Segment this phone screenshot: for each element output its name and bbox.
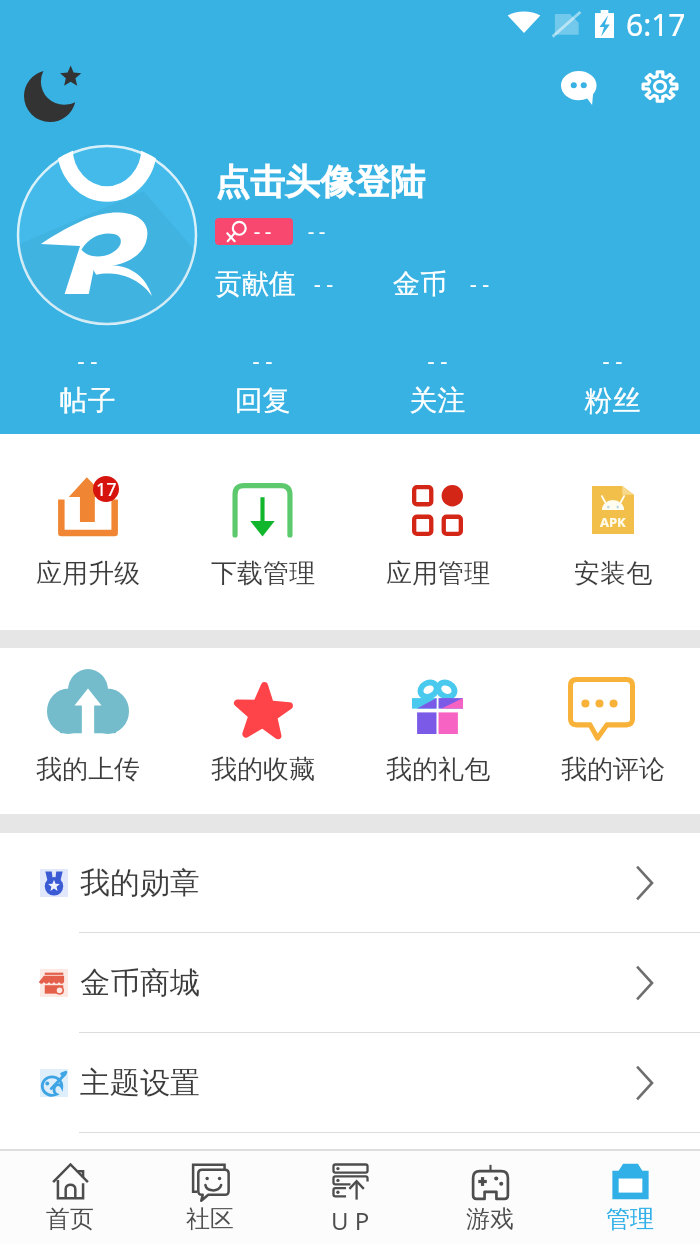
staticText: 我的礼包 [386, 753, 490, 786]
button[interactable]: - - [525, 345, 700, 418]
staticText: 关注 [350, 383, 525, 418]
staticText: 点击头像登陆 [215, 160, 425, 204]
button[interactable]: 游戏 [420, 1151, 560, 1244]
staticText: 帖子 [0, 383, 175, 418]
staticText: - - [175, 345, 350, 375]
staticText: U P [331, 1204, 370, 1237]
staticText: 我的勋章 [80, 864, 200, 902]
staticText: 我的收藏 [211, 753, 315, 786]
staticText: - - [0, 345, 175, 375]
button[interactable]: 我的上传 [0, 753, 175, 786]
button[interactable]: 我的勋章 [0, 833, 700, 933]
button[interactable]: 管理 [560, 1151, 700, 1244]
staticText: 金币 [393, 267, 447, 301]
staticText: - - [525, 345, 700, 375]
staticText: - - [314, 270, 333, 299]
staticText: 我的上传 [36, 753, 140, 786]
staticText: 6:17 [626, 4, 686, 45]
button[interactable]: - - [175, 345, 350, 418]
button[interactable]: Avatar login [16, 144, 198, 326]
staticText: 贡献值 [215, 267, 296, 301]
button[interactable]: 首页 [0, 1151, 140, 1244]
button[interactable]: Night mode [11, 56, 90, 135]
staticText: - - [308, 219, 326, 245]
staticText: - - [470, 270, 489, 299]
button[interactable]: 金币商城 [0, 933, 700, 1033]
button[interactable]: 我的礼包 [350, 753, 525, 786]
staticText: 应用管理 [386, 557, 490, 590]
button[interactable]: - - [0, 345, 175, 418]
staticText: 金币商城 [80, 964, 200, 1002]
staticText: 社区 [186, 1204, 234, 1234]
staticText: 17 [96, 477, 117, 502]
button[interactable]: U P [280, 1151, 420, 1244]
button[interactable]: Messages [543, 52, 615, 124]
staticText: 下载管理 [211, 557, 315, 590]
staticText: 回复 [175, 383, 350, 418]
staticText: 管理 [606, 1204, 654, 1234]
button[interactable]: 我的收藏 [175, 753, 350, 786]
staticText: 粉丝 [525, 383, 700, 418]
button[interactable]: 社区 [140, 1151, 280, 1244]
button[interactable]: - - [350, 345, 525, 418]
staticText: - - [350, 345, 525, 375]
button[interactable]: 应用管理 [350, 557, 525, 590]
button[interactable]: 主题设置 [0, 1033, 700, 1133]
button[interactable]: Settings [624, 50, 696, 122]
staticText: APK [600, 513, 626, 531]
staticText: 首页 [46, 1204, 94, 1234]
button[interactable]: 安装包 [525, 557, 700, 590]
staticText: 游戏 [466, 1204, 514, 1234]
staticText: 应用升级 [36, 557, 140, 590]
staticText: 安装包 [574, 557, 652, 590]
staticText: 主题设置 [80, 1064, 200, 1102]
button[interactable]: 应用升级 [0, 557, 175, 590]
staticText: 我的评论 [561, 753, 665, 786]
staticText: - - [254, 219, 272, 245]
button[interactable]: 我的评论 [525, 753, 700, 786]
button[interactable]: 下载管理 [175, 557, 350, 590]
